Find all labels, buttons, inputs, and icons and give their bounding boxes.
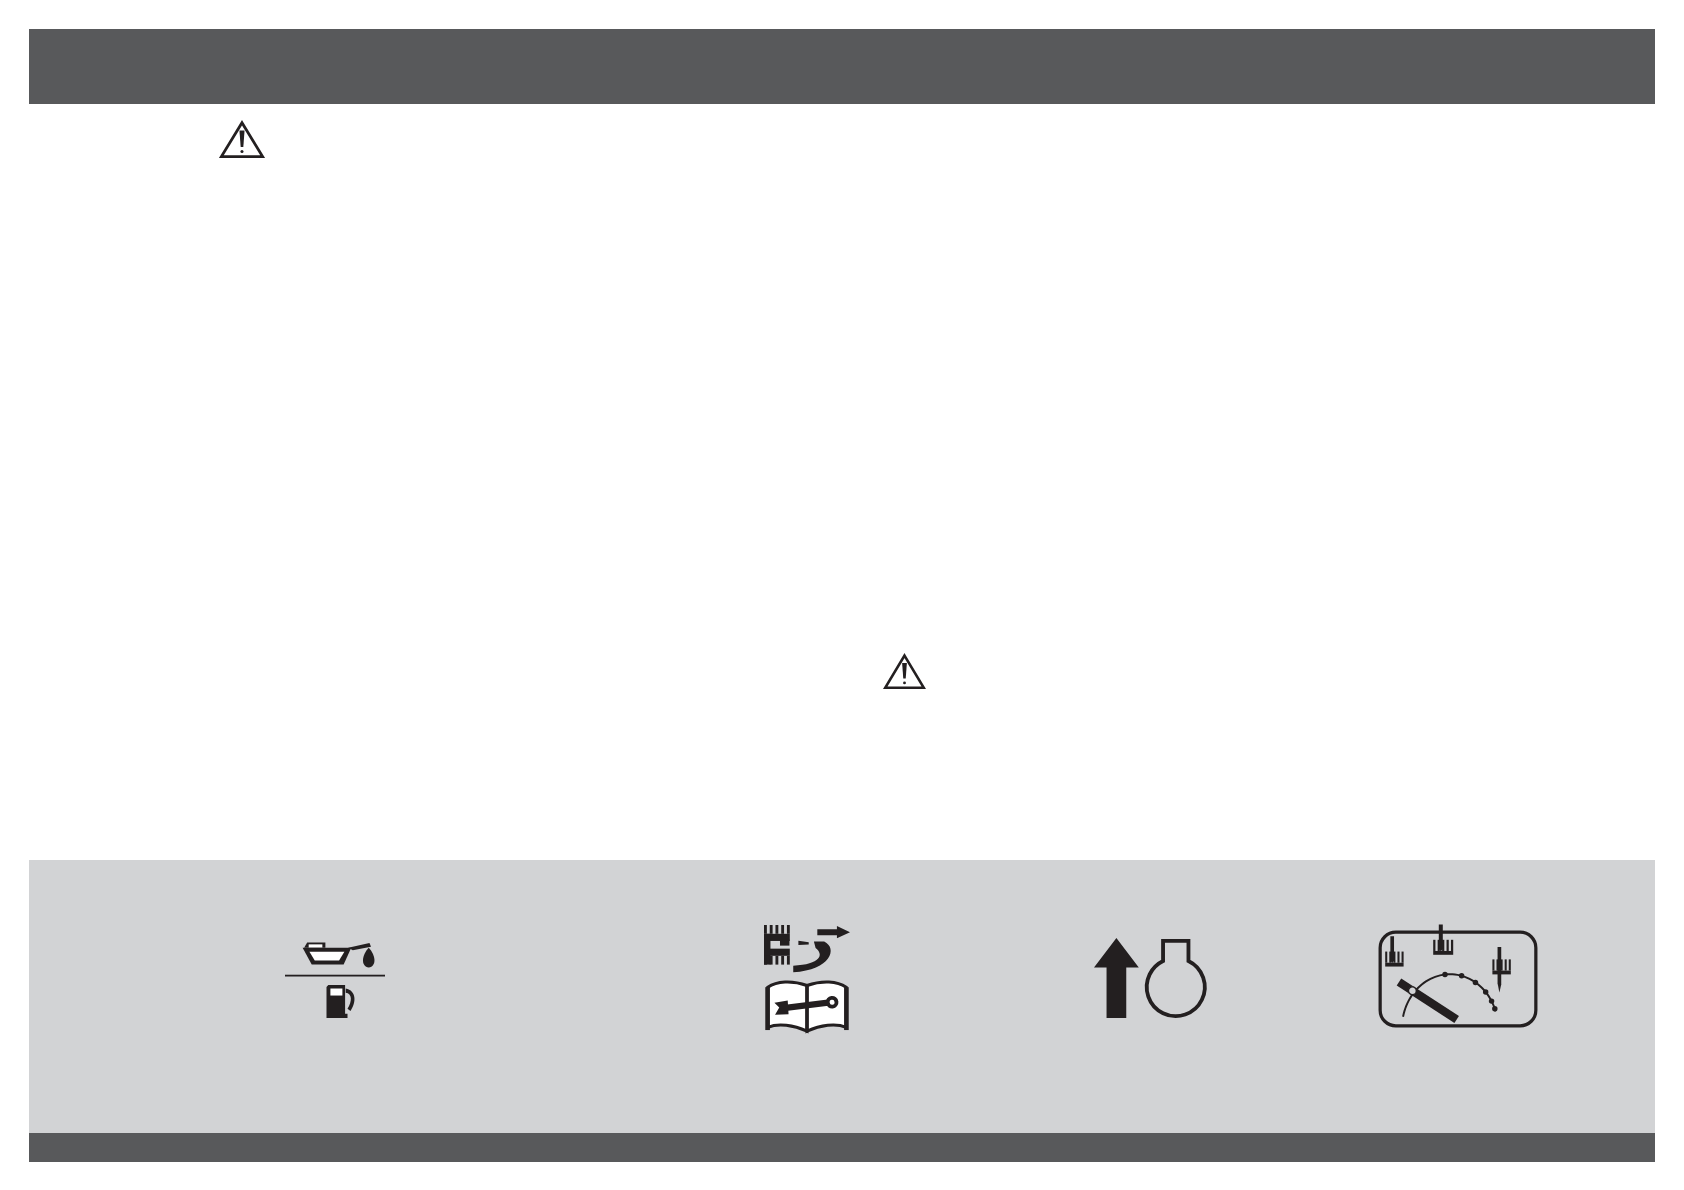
button[interactable]: Pressure increase (1094, 938, 1206, 1018)
button[interactable]: Oil and fuel (285, 940, 385, 1018)
button[interactable]: Diagnostic connection and service manual (764, 925, 850, 1035)
button[interactable]: Gauge measurement (1378, 930, 1538, 1028)
